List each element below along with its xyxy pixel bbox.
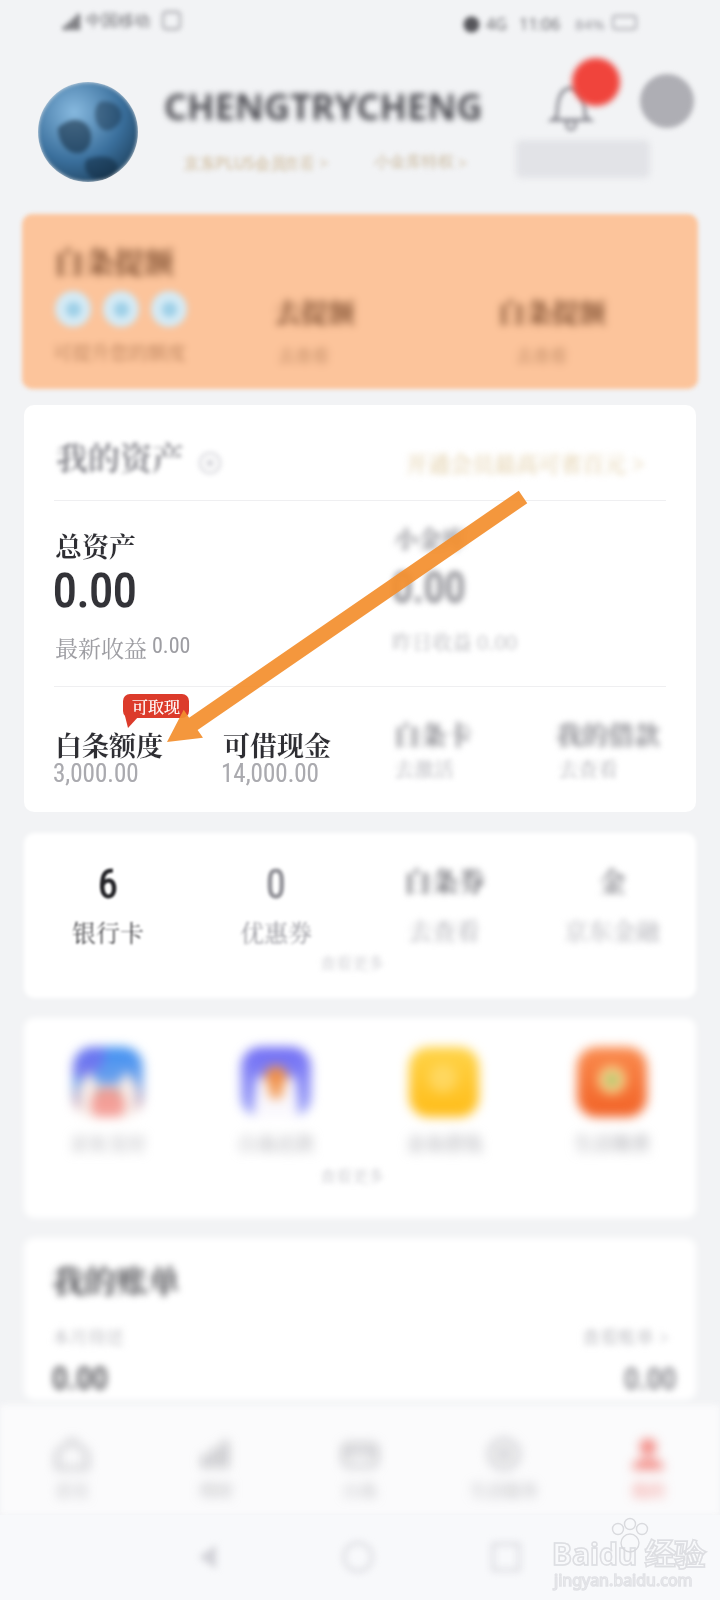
staticText: 白条还款	[238, 1129, 315, 1156]
staticText: 小金库	[394, 520, 466, 554]
staticText: 银行卡	[72, 914, 144, 948]
staticText: 去查看	[558, 754, 618, 783]
staticText: 中国移动	[86, 11, 150, 31]
staticText: 白条	[343, 1477, 377, 1501]
staticText: 查看账单 >	[582, 1323, 670, 1349]
button[interactable]: 白条还款	[192, 1018, 360, 1218]
staticText: 去激活	[394, 754, 454, 783]
button[interactable]: 生活缴费	[528, 1018, 696, 1218]
staticText: 可借现金	[223, 725, 331, 764]
staticText: 查看更多	[320, 1164, 385, 1187]
staticText: 京东金融	[564, 912, 660, 946]
staticText: 生活服务	[470, 1477, 538, 1501]
staticText: 3,000.00	[53, 759, 139, 788]
staticText: Baidu 经验	[552, 1533, 706, 1574]
staticText: 0	[266, 861, 286, 908]
button[interactable]: 首页	[0, 1405, 144, 1515]
staticText: 白条券	[404, 861, 485, 900]
staticText: 优惠券	[240, 914, 312, 948]
staticText: 14,000.00	[221, 759, 319, 788]
staticText: 去查看	[278, 342, 329, 366]
button[interactable]: 理财	[144, 1405, 288, 1515]
staticText: 昨日收益 0.00	[392, 627, 518, 656]
staticText: 0.00	[152, 633, 191, 659]
staticText: 去查看	[408, 912, 480, 946]
staticText: 去提额	[274, 292, 355, 331]
staticText: 我的借款	[556, 715, 661, 752]
staticText: 0.00	[624, 1361, 677, 1396]
staticText: 我的资产	[56, 433, 185, 479]
staticText: 4G 11:06	[486, 13, 561, 35]
staticText: 84%	[575, 14, 605, 34]
staticText: 京东PLUS会员	[184, 152, 287, 174]
staticText: 首页	[55, 1477, 89, 1501]
staticText: 开通会员最高可省百元 >	[406, 447, 645, 479]
button[interactable]: 0	[192, 833, 360, 998]
button[interactable]: 白条提额	[22, 214, 698, 389]
staticText: 我的	[631, 1477, 665, 1501]
staticText: 0.00	[52, 1359, 108, 1397]
staticText: 0.00	[392, 563, 466, 612]
button[interactable]: 6	[24, 833, 192, 998]
staticText: 小金库特权	[374, 152, 454, 172]
staticText: 金	[599, 861, 626, 900]
button[interactable]: 金条借钱	[360, 1018, 528, 1218]
staticText: 总资产	[55, 526, 136, 565]
staticText: jingyan.baidu.com	[554, 1569, 693, 1591]
staticText: 6	[98, 861, 118, 908]
button[interactable]: 我的	[576, 1405, 720, 1515]
staticText: 可取现	[132, 695, 181, 718]
staticText: CHENGTRYCHENG	[164, 82, 483, 131]
staticText: 金条借钱	[406, 1129, 483, 1156]
staticText: 白条卡	[394, 715, 473, 752]
staticText: 查看 >	[283, 152, 329, 174]
staticText: 理财	[199, 1477, 233, 1501]
staticText: >	[458, 152, 468, 174]
staticText: 白条提额	[54, 238, 174, 281]
staticText: 白条提额	[498, 292, 606, 331]
staticText: 查看更多	[320, 951, 385, 974]
button[interactable]: Profile avatar	[38, 82, 138, 182]
button[interactable]: 白条券	[360, 833, 528, 998]
staticText: 去查看	[516, 342, 567, 366]
staticText: 可提升您的额度	[53, 338, 187, 365]
staticText: 京东支付	[70, 1129, 147, 1156]
staticText: 白条额度	[55, 725, 163, 764]
staticText: 0.00	[53, 562, 137, 618]
staticText: 生活缴费	[574, 1129, 651, 1156]
button[interactable]: Notifications	[540, 76, 596, 132]
button[interactable]: 金	[528, 833, 696, 998]
button[interactable]: 白条	[288, 1405, 432, 1515]
staticText: 最新收益	[55, 631, 147, 664]
staticText: 本月待还	[52, 1323, 124, 1349]
button[interactable]: 生活服务	[432, 1405, 576, 1515]
button[interactable]: 京东支付	[24, 1018, 192, 1218]
staticText: 我的账单	[52, 1256, 181, 1302]
button[interactable]: Settings	[640, 74, 694, 128]
